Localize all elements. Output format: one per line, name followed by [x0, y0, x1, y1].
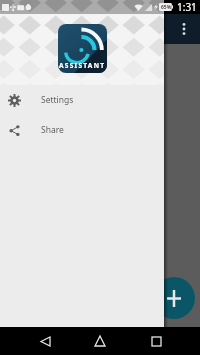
staticText: Share: [41, 124, 64, 136]
staticText: 1:31: [177, 0, 197, 14]
staticText: ASSISTANT: [59, 61, 106, 70]
button[interactable]: Add: [153, 277, 195, 319]
button[interactable]: Settings: [0, 85, 164, 115]
staticText: 65%: [161, 4, 172, 11]
staticText: Settings: [41, 94, 74, 106]
button[interactable]: Back: [34, 330, 56, 352]
button[interactable]: More options: [172, 17, 196, 41]
button[interactable]: Share: [0, 115, 164, 145]
button[interactable]: Home: [89, 330, 111, 352]
button[interactable]: Recents: [145, 330, 167, 352]
